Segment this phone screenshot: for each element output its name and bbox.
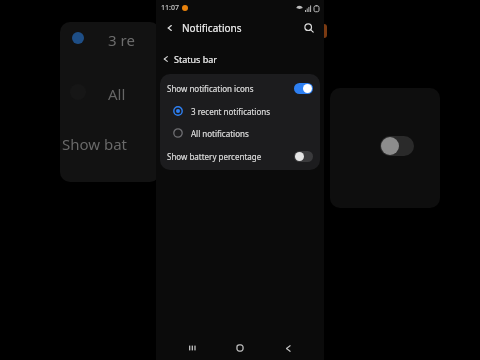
staticText: Status bar [174, 53, 218, 65]
button[interactable]: Show notification icons [160, 76, 320, 100]
button[interactable]: Home [229, 337, 251, 359]
staticText: Show battery percentage [167, 151, 294, 162]
staticText: Notifications [182, 21, 242, 35]
staticText: All notifications [191, 128, 249, 139]
button[interactable]: All notifications [160, 122, 320, 144]
button[interactable]: Recents [182, 337, 204, 359]
button[interactable]: 3 recent notifications [160, 100, 320, 122]
staticText: 3 recent notifications [191, 106, 271, 117]
button[interactable]: Show battery percentage [160, 144, 320, 168]
button[interactable]: Search [300, 19, 318, 37]
staticText: All [108, 84, 126, 104]
staticText: Show notification icons [167, 83, 294, 94]
staticText: Show bat [62, 134, 128, 154]
button[interactable]: Back [277, 337, 299, 359]
button[interactable]: Back [162, 20, 178, 36]
button[interactable]: Status bar [156, 50, 324, 68]
staticText: 3 re [108, 30, 135, 50]
staticText: 11:07 [161, 3, 179, 13]
